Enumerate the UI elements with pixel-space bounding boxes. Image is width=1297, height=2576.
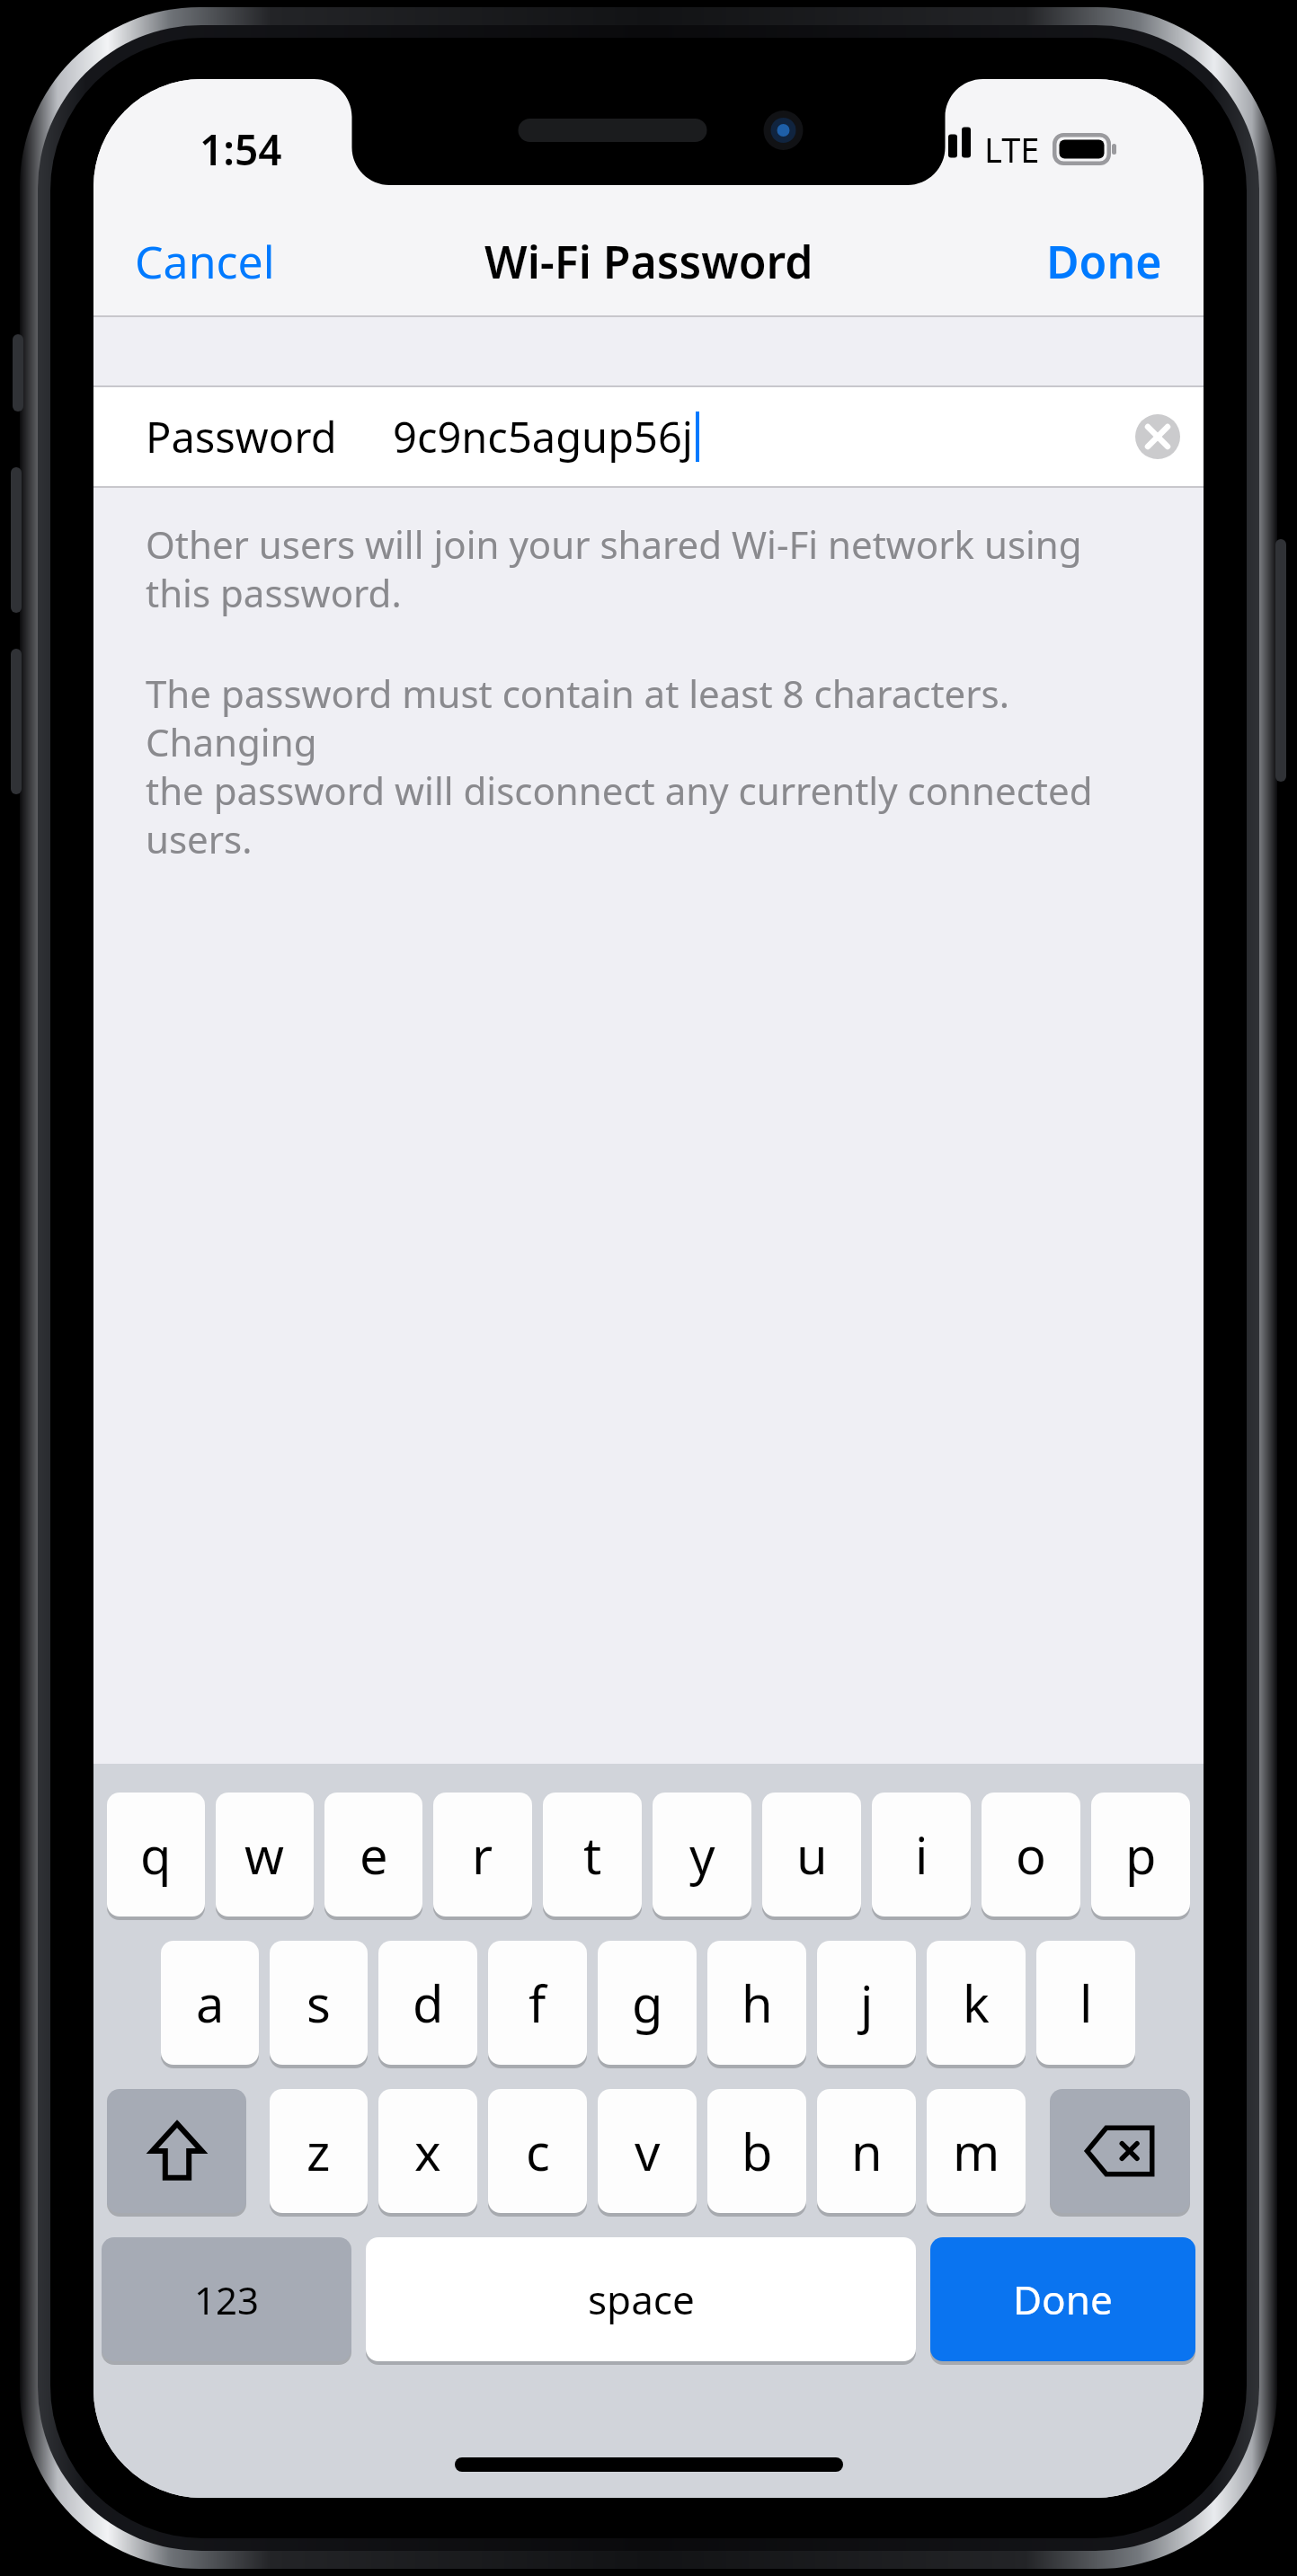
staticText: r <box>472 1820 493 1889</box>
button[interactable]: e <box>324 1793 422 1917</box>
button[interactable]: j <box>817 1941 916 2065</box>
button[interactable]: v <box>598 2089 697 2213</box>
button[interactable]: f <box>488 1941 587 2065</box>
button[interactable]: p <box>1091 1793 1190 1917</box>
staticText: Cancel <box>135 231 275 292</box>
staticText: h <box>742 1969 773 2037</box>
button[interactable]: n <box>817 2089 916 2213</box>
staticText: 1:54 <box>200 121 282 178</box>
staticText: a <box>196 1969 225 2037</box>
staticText: w <box>244 1820 285 1889</box>
button[interactable]: k <box>927 1941 1026 2065</box>
staticText: z <box>306 2117 331 2185</box>
button[interactable]: y <box>653 1793 751 1917</box>
button[interactable]: Cancel <box>93 213 316 310</box>
staticText: Wi-Fi Password <box>484 231 813 292</box>
button[interactable]: d <box>378 1941 477 2065</box>
button[interactable]: l <box>1036 1941 1135 2065</box>
staticText: Done <box>1013 2272 1113 2326</box>
staticText: x <box>414 2117 441 2185</box>
staticText: q <box>140 1820 172 1889</box>
staticText: i <box>915 1820 928 1889</box>
staticText: d <box>413 1969 444 2037</box>
staticText: n <box>851 2117 883 2185</box>
staticText: Done <box>1046 231 1162 292</box>
staticText: Password <box>146 408 337 465</box>
staticText: t <box>583 1820 602 1889</box>
button[interactable]: b <box>707 2089 806 2213</box>
staticText: The password must contain at least 8 cha… <box>146 668 1168 865</box>
staticText: space <box>588 2272 695 2326</box>
staticText: Other users will join your shared Wi-Fi … <box>146 518 1082 619</box>
staticText: s <box>306 1969 331 2037</box>
staticText: 123 <box>194 2274 260 2325</box>
button[interactable] <box>107 2089 246 2213</box>
button[interactable]: r <box>433 1793 532 1917</box>
staticText: c <box>526 2117 550 2185</box>
button[interactable]: x <box>378 2089 477 2213</box>
button[interactable]: s <box>270 1941 368 2065</box>
staticText: v <box>635 2117 661 2185</box>
button[interactable]: i <box>872 1793 971 1917</box>
button[interactable]: q <box>107 1793 205 1917</box>
staticText: l <box>1079 1969 1093 2037</box>
button[interactable]: w <box>216 1793 314 1917</box>
button[interactable]: o <box>982 1793 1080 1917</box>
button[interactable]: z <box>270 2089 368 2213</box>
staticText: u <box>796 1820 828 1889</box>
staticText: 9c9nc5agup56j <box>393 408 693 465</box>
other: Shift <box>107 2089 246 2213</box>
button[interactable]: u <box>762 1793 861 1917</box>
button[interactable]: Password <box>93 387 1204 486</box>
button[interactable]: space <box>366 2237 916 2361</box>
button[interactable]: Done <box>1005 213 1204 310</box>
staticText: e <box>360 1820 388 1889</box>
staticText: m <box>953 2117 1000 2185</box>
button[interactable]: a <box>161 1941 259 2065</box>
staticText: b <box>742 2117 773 2185</box>
button[interactable]: t <box>543 1793 642 1917</box>
button[interactable]: m <box>927 2089 1026 2213</box>
button[interactable]: Done <box>930 2237 1195 2361</box>
button[interactable]: h <box>707 1941 806 2065</box>
button[interactable] <box>1050 2089 1190 2213</box>
button[interactable]: c <box>488 2089 587 2213</box>
button[interactable]: 123 <box>102 2237 351 2361</box>
other: Backspace <box>1050 2089 1190 2213</box>
staticText: g <box>632 1969 663 2037</box>
staticText: LTE <box>984 126 1040 173</box>
staticText: o <box>1016 1820 1046 1889</box>
staticText: k <box>963 1969 990 2037</box>
staticText: p <box>1125 1820 1157 1889</box>
staticText: y <box>689 1820 715 1889</box>
button[interactable]: Clear text <box>1112 400 1204 474</box>
button[interactable]: g <box>598 1941 697 2065</box>
staticText: f <box>529 1969 546 2037</box>
staticText: j <box>860 1969 874 2037</box>
